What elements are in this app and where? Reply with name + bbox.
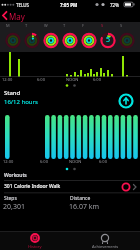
staticText: Achievements xyxy=(92,244,119,249)
button[interactable]: Achievements xyxy=(70,231,140,250)
button[interactable]: 301 Calorie Indoor Walk xyxy=(0,180,140,193)
button[interactable]: Stand xyxy=(0,87,140,112)
staticText: May xyxy=(9,11,25,22)
staticText: 5 xyxy=(106,35,111,45)
staticText: S xyxy=(101,23,115,28)
staticText: F xyxy=(82,23,96,28)
staticText: 72% xyxy=(110,2,119,8)
staticText: T xyxy=(25,23,39,28)
staticText: 301 Calorie Indoor Walk xyxy=(4,183,61,190)
staticText: NOON xyxy=(69,159,82,164)
staticText: W xyxy=(44,23,58,28)
staticText: 20,301 xyxy=(3,202,25,212)
staticText: Steps xyxy=(4,195,17,202)
staticText: 6:00 xyxy=(99,159,107,164)
staticText: Distance xyxy=(70,195,91,202)
staticText: 12:00 xyxy=(3,159,14,164)
staticText: 12:00 xyxy=(2,77,13,82)
staticText: 16/12 hours xyxy=(4,98,38,106)
staticText: 6:00 xyxy=(37,77,45,82)
staticText: M xyxy=(6,23,20,28)
button[interactable]: May xyxy=(0,9,140,22)
staticText: Stand xyxy=(4,89,21,97)
staticText: 6:00 xyxy=(93,77,101,82)
button[interactable]: History xyxy=(0,231,70,250)
staticText: 6:00 xyxy=(40,159,48,164)
button[interactable]: M xyxy=(0,22,140,52)
staticText: TELUS xyxy=(16,2,30,8)
staticText: 7:05 PM xyxy=(60,2,78,8)
staticText: 16.07 km xyxy=(69,202,99,212)
staticText: History xyxy=(28,244,42,249)
staticText: S xyxy=(120,23,134,28)
staticText: T xyxy=(63,23,77,28)
staticText: Workouts xyxy=(4,172,27,179)
staticText: NOON xyxy=(66,77,79,82)
